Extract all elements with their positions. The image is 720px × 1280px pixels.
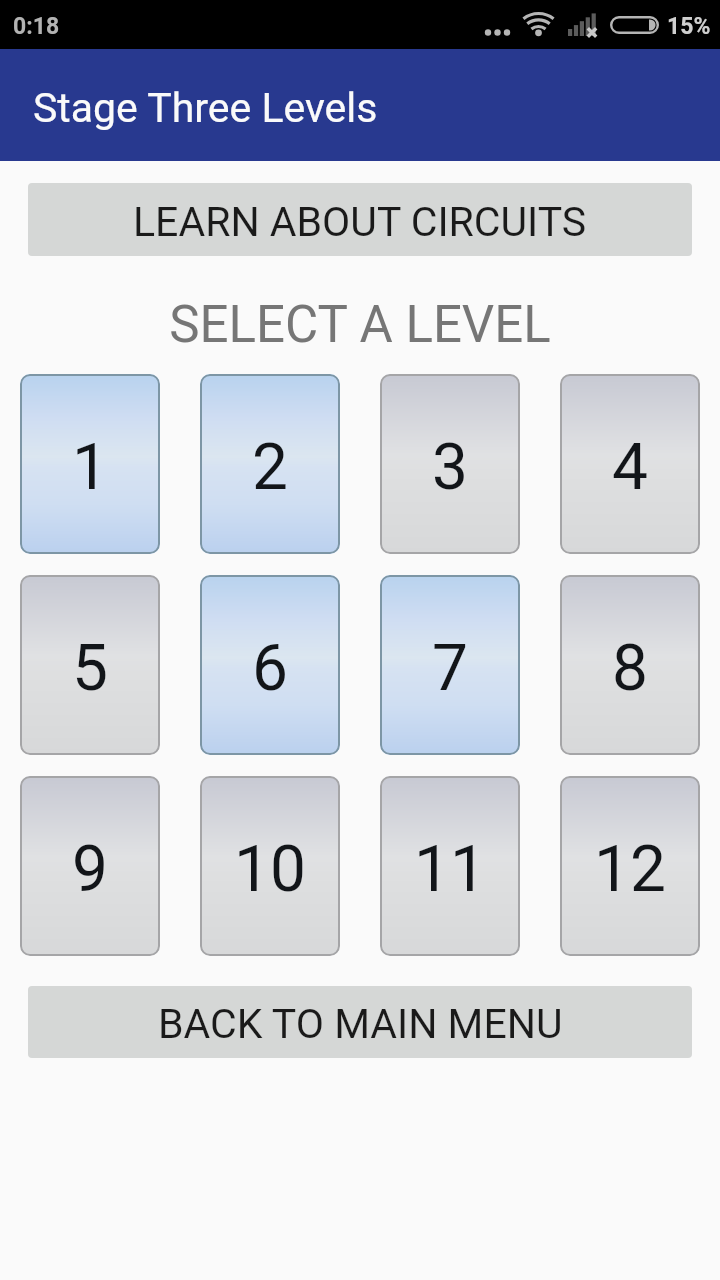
button[interactable]: 6 [200, 575, 340, 755]
button[interactable]: 2 [200, 374, 340, 554]
button[interactable]: 7 [380, 575, 520, 755]
staticText: Stage Three Levels [33, 84, 378, 132]
button[interactable]: 9 [20, 776, 160, 956]
button[interactable]: 5 [20, 575, 160, 755]
staticText: 1 [72, 430, 108, 505]
staticText: 2 [252, 430, 288, 505]
button[interactable]: 3 [380, 374, 520, 554]
button[interactable]: 12 [560, 776, 700, 956]
button[interactable]: 8 [560, 575, 700, 755]
staticText: 15% [667, 13, 711, 40]
button[interactable]: 10 [200, 776, 340, 956]
staticText: 4 [612, 430, 648, 505]
staticText: 7 [432, 631, 468, 706]
staticText: 6 [252, 631, 288, 706]
staticText: 9 [72, 832, 108, 907]
staticText: 5 [72, 631, 108, 706]
staticText: BACK TO MAIN MENU [158, 1000, 563, 1048]
staticText: 0:18 [13, 13, 60, 40]
staticText: 10 [234, 832, 306, 907]
staticText: LEARN ABOUT CIRCUITS [133, 198, 587, 246]
button[interactable]: BACK TO MAIN MENU [28, 986, 692, 1058]
staticText: 11 [414, 832, 486, 907]
staticText: 12 [594, 832, 666, 907]
button[interactable]: 4 [560, 374, 700, 554]
button[interactable]: 1 [20, 374, 160, 554]
staticText: 3 [432, 430, 468, 505]
staticText: 8 [612, 631, 648, 706]
button[interactable]: LEARN ABOUT CIRCUITS [28, 183, 692, 256]
staticText: SELECT A LEVEL [0, 295, 720, 355]
button[interactable]: 11 [380, 776, 520, 956]
